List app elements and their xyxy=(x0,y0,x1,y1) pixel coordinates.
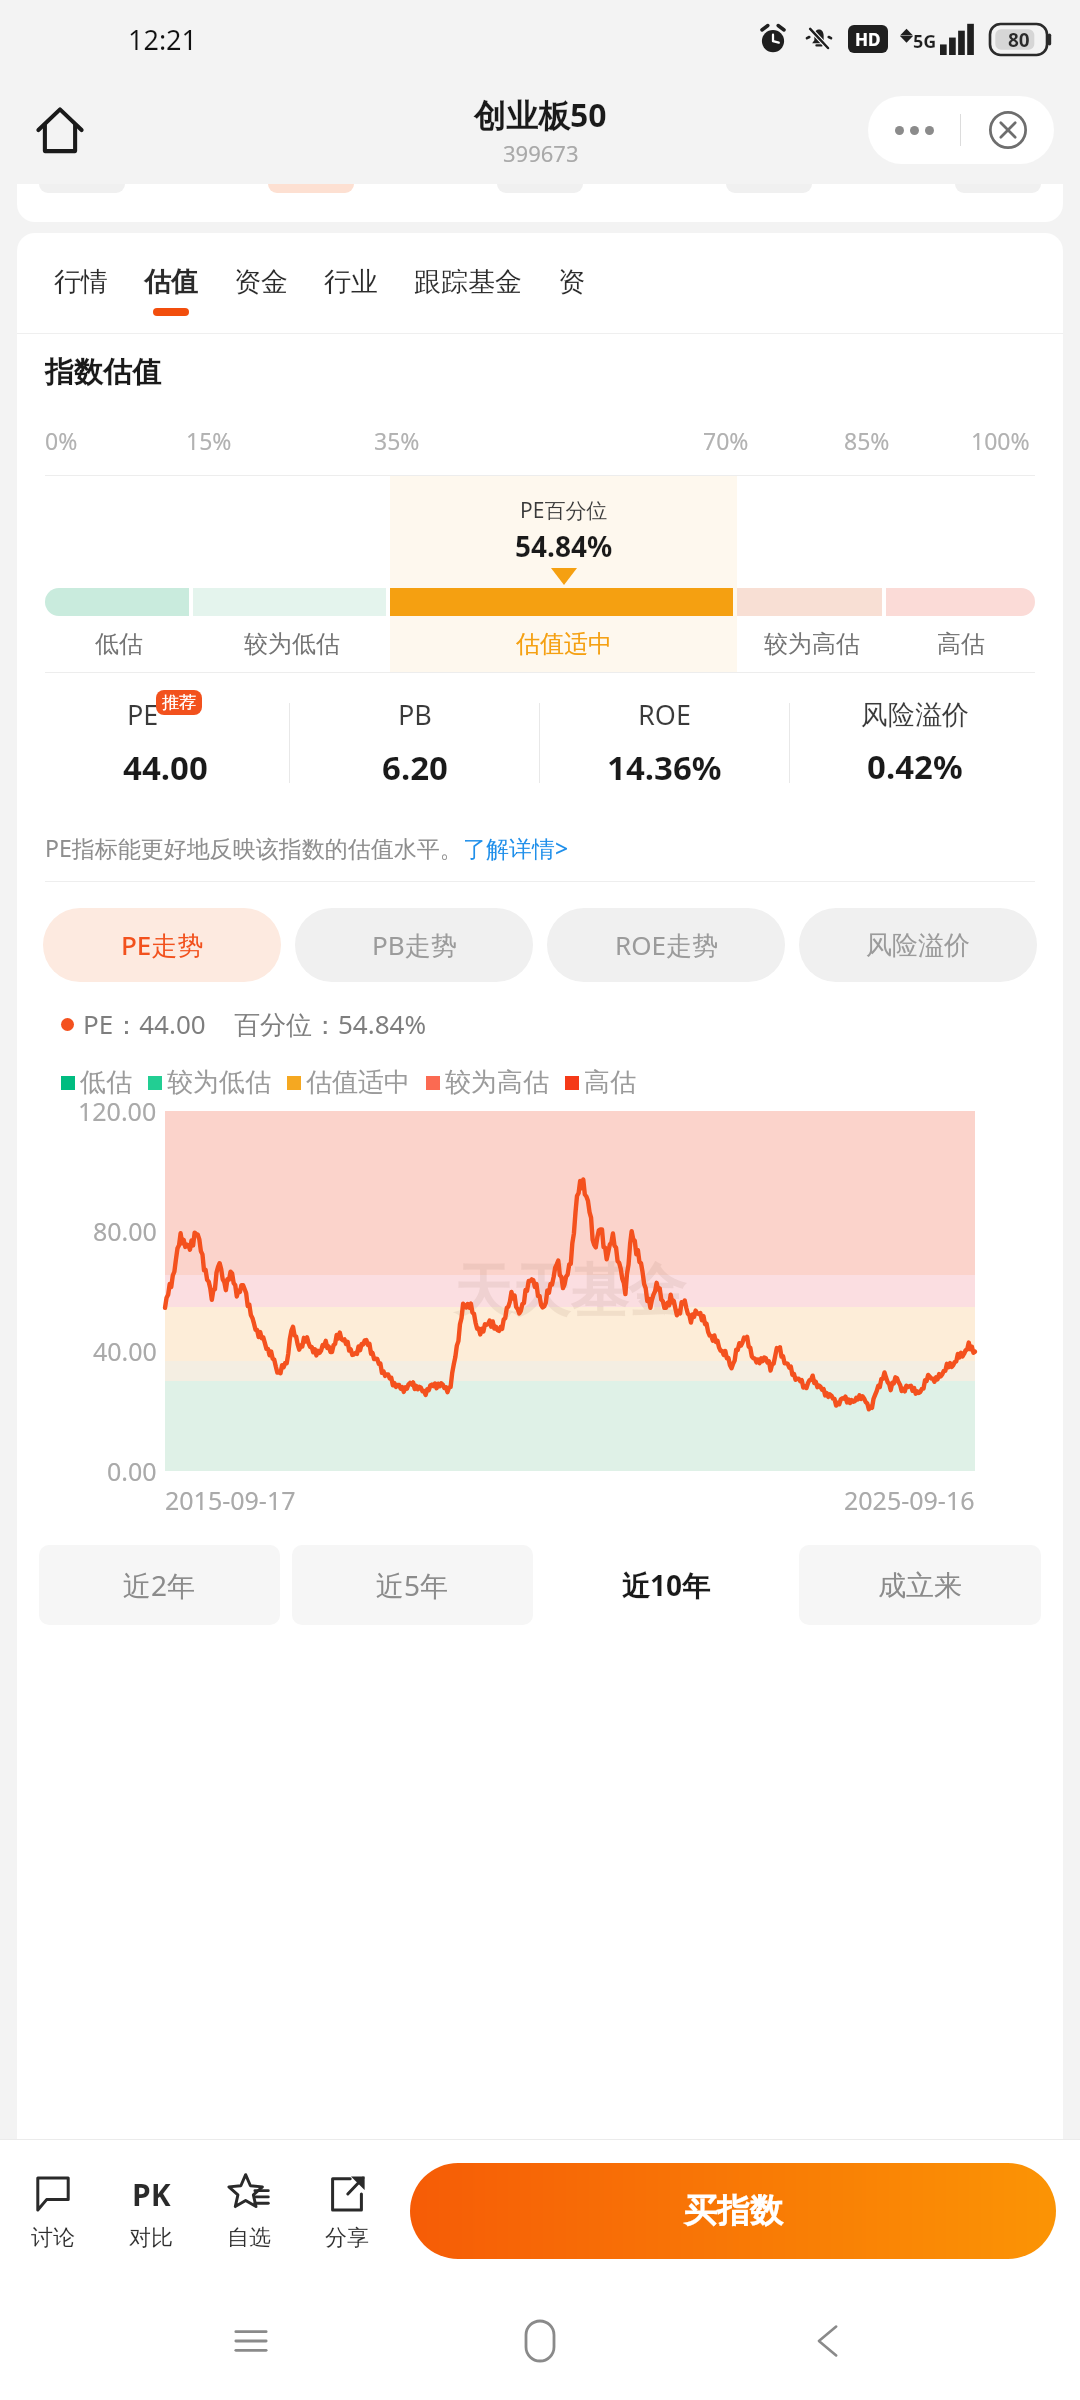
staticText: 推荐 xyxy=(162,692,196,713)
staticText: 分享 xyxy=(325,2224,369,2252)
staticText: 14.36% xyxy=(607,745,722,790)
staticText: PB走势 xyxy=(372,927,457,963)
button[interactable]: PE走势 xyxy=(43,908,281,982)
staticText: 较为高估 xyxy=(445,1066,549,1099)
button[interactable]: 近2年 xyxy=(39,1545,280,1625)
button[interactable]: 行情 xyxy=(41,233,121,333)
button[interactable]: 行业 xyxy=(311,233,391,333)
staticText: PE走势 xyxy=(121,927,204,963)
staticText: 低估 xyxy=(95,629,143,659)
button[interactable]: ROE走势 xyxy=(547,908,785,982)
button[interactable]: PK xyxy=(102,2140,200,2282)
button[interactable]: 分享 xyxy=(298,2140,396,2282)
button[interactable]: 跟踪基金 xyxy=(401,233,535,333)
staticText: 35% xyxy=(374,425,420,456)
staticText: 行情 xyxy=(54,265,108,299)
staticText: 了解详情> xyxy=(463,832,569,863)
staticText: 近5年 xyxy=(376,1566,449,1604)
staticText: PE：44.00 xyxy=(83,1006,206,1042)
button[interactable]: 风险溢价 xyxy=(790,673,1039,813)
staticText: 0.00 xyxy=(107,1454,157,1488)
staticText: 0.42% xyxy=(867,744,963,789)
staticText: 资 xyxy=(558,265,585,299)
button[interactable]: 买指数 xyxy=(410,2163,1056,2259)
staticText: 6.20 xyxy=(382,745,448,790)
staticText: HD xyxy=(855,28,881,51)
button[interactable] xyxy=(39,184,125,193)
staticText: PE指标能更好地反映该指数的估值水平。 xyxy=(45,832,463,863)
staticText: ROE走势 xyxy=(615,927,718,963)
staticText: ROE xyxy=(638,696,691,733)
button[interactable] xyxy=(726,184,812,193)
staticText: 5G xyxy=(913,29,937,54)
button[interactable] xyxy=(955,184,1041,193)
button[interactable]: 近10年 xyxy=(545,1545,787,1625)
button[interactable]: Home xyxy=(24,94,96,166)
staticText: 0% xyxy=(45,425,78,456)
staticText: 2015-09-17 xyxy=(165,1483,296,1517)
button[interactable]: Close xyxy=(961,96,1054,164)
staticText: 2025-09-16 xyxy=(844,1483,975,1517)
staticText: 讨论 xyxy=(31,2224,75,2252)
staticText: 15% xyxy=(186,425,232,456)
staticText: 低估 xyxy=(80,1066,132,1099)
staticText: 自选 xyxy=(227,2224,271,2252)
button[interactable]: Back xyxy=(791,2303,867,2379)
staticText: 资金 xyxy=(234,265,288,299)
staticText: 较为高估 xyxy=(764,629,860,659)
staticText: 估值适中 xyxy=(516,629,612,659)
staticText: PE xyxy=(127,696,159,733)
staticText: 较为低估 xyxy=(244,629,340,659)
button[interactable]: Recents xyxy=(213,2303,289,2379)
staticText: 44.00 xyxy=(123,745,208,790)
button[interactable] xyxy=(497,184,583,193)
staticText: 399673 xyxy=(503,138,579,168)
staticText: 估值 xyxy=(144,265,198,299)
staticText: 40.00 xyxy=(93,1334,157,1368)
staticText: 指数估值 xyxy=(45,354,161,391)
staticText: 近2年 xyxy=(123,1566,196,1604)
button[interactable]: 自选 xyxy=(200,2140,298,2282)
staticText: 估值适中 xyxy=(306,1066,410,1099)
staticText: 近10年 xyxy=(622,1566,711,1604)
button[interactable] xyxy=(268,184,354,193)
button[interactable]: 了解详情> xyxy=(463,832,569,863)
staticText: 54.84% xyxy=(515,527,613,565)
staticText: PK xyxy=(132,2174,171,2215)
staticText: 70% xyxy=(703,425,749,456)
staticText: PE百分位 xyxy=(520,496,608,525)
button[interactable] xyxy=(45,588,189,616)
button[interactable]: 资 xyxy=(545,233,598,333)
button[interactable]: 风险溢价 xyxy=(799,908,1037,982)
button[interactable]: 估值 xyxy=(131,233,211,333)
button[interactable]: 资金 xyxy=(221,233,301,333)
staticText: 买指数 xyxy=(684,2190,783,2232)
button[interactable]: 近5年 xyxy=(292,1545,533,1625)
staticText: 天天基金 xyxy=(454,1255,686,1328)
staticText: 80 xyxy=(1008,27,1030,53)
staticText: 对比 xyxy=(129,2224,173,2252)
button[interactable]: ROE xyxy=(540,673,789,813)
button[interactable]: More options xyxy=(868,96,960,164)
staticText: 120.00 xyxy=(78,1094,157,1128)
staticText: 风险溢价 xyxy=(866,929,970,962)
staticText: 85% xyxy=(844,425,890,456)
staticText: 风险溢价 xyxy=(861,698,969,732)
button[interactable]: PB xyxy=(290,673,539,813)
button[interactable]: PB走势 xyxy=(295,908,533,982)
staticText: 成立来 xyxy=(878,1568,962,1603)
staticText: 高估 xyxy=(584,1066,636,1099)
button[interactable]: PE xyxy=(41,673,289,813)
button[interactable]: 讨论 xyxy=(4,2140,102,2282)
button[interactable]: Home xyxy=(502,2303,578,2379)
button[interactable]: 成立来 xyxy=(799,1545,1041,1625)
staticText: 创业板50 xyxy=(474,93,607,137)
button[interactable] xyxy=(886,588,1035,616)
staticText: 跟踪基金 xyxy=(414,265,522,299)
staticText: 12:21 xyxy=(128,21,198,58)
staticText: 行业 xyxy=(324,265,378,299)
staticText: 80.00 xyxy=(93,1214,157,1248)
